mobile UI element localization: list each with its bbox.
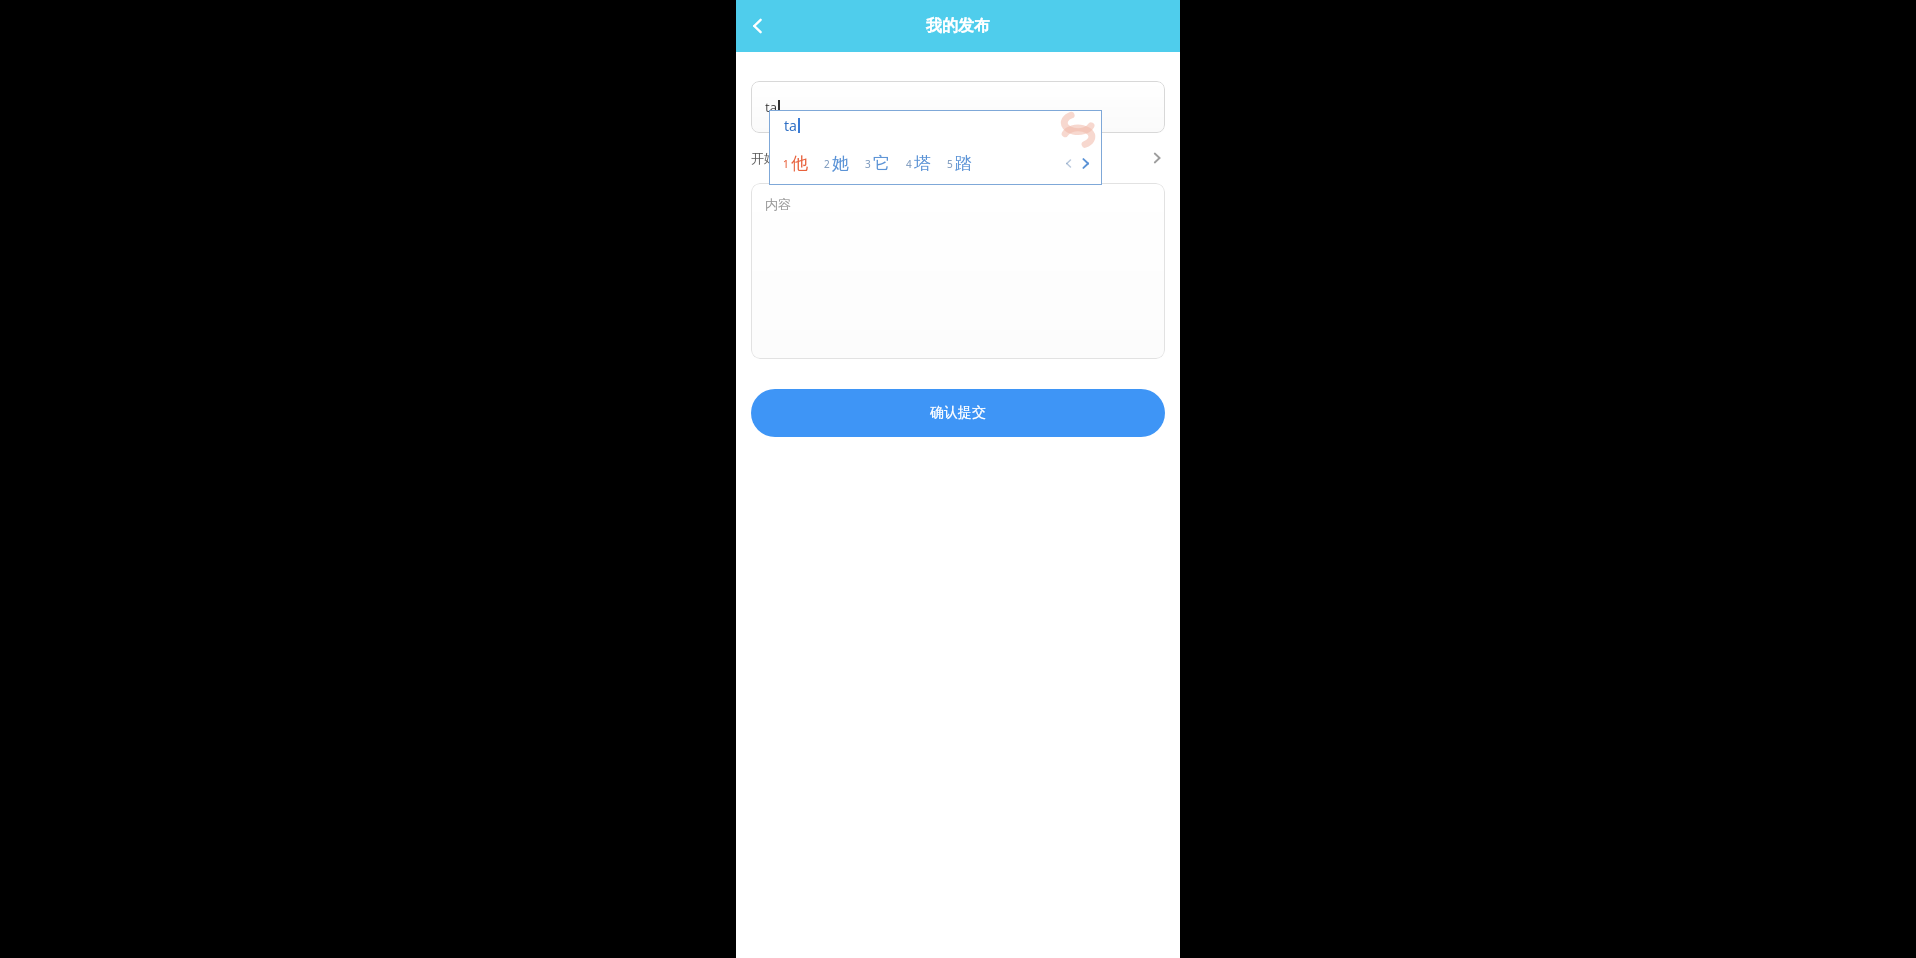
staticText: 4 bbox=[906, 157, 912, 171]
button[interactable]: 2 bbox=[823, 151, 850, 176]
button[interactable]: Previous page bbox=[1060, 155, 1076, 171]
staticText: 她 bbox=[832, 153, 849, 174]
button[interactable]: Next page bbox=[1076, 154, 1094, 172]
staticText: ta bbox=[784, 116, 797, 135]
button[interactable]: 确认提交 bbox=[751, 389, 1165, 437]
staticText: 我的发布 bbox=[926, 16, 990, 36]
button[interactable]: 4 bbox=[905, 151, 932, 176]
staticText: 踏 bbox=[955, 153, 972, 174]
staticText: 1 bbox=[783, 157, 789, 171]
staticText: 5 bbox=[947, 157, 953, 171]
button[interactable]: 5 bbox=[946, 151, 973, 176]
button[interactable]: 内容 bbox=[751, 183, 1165, 359]
button[interactable]: 3 bbox=[864, 151, 891, 176]
staticText: 确认提交 bbox=[930, 404, 986, 422]
staticText: 塔 bbox=[914, 153, 931, 174]
staticText: 开始时间 bbox=[751, 150, 803, 166]
staticText: ta bbox=[765, 98, 777, 116]
staticText: 他 bbox=[791, 153, 808, 174]
staticText: 3 bbox=[865, 157, 871, 171]
staticText: 内容 bbox=[765, 196, 791, 212]
button[interactable]: 1 bbox=[782, 151, 809, 176]
button[interactable]: 开始时间 bbox=[751, 133, 1165, 183]
staticText: 2 bbox=[824, 157, 830, 171]
button[interactable]: ta bbox=[751, 81, 1165, 133]
staticText: 它 bbox=[873, 153, 890, 174]
button[interactable]: Back bbox=[736, 4, 780, 48]
